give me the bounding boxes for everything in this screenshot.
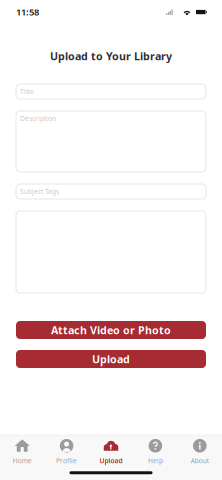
button[interactable]: Upload [89,435,133,471]
staticText: Upload [92,352,130,366]
button[interactable]: Help [133,435,178,471]
staticText: 11:58 [16,6,39,18]
staticText: Help [148,456,163,465]
staticText: Upload to Your Library [50,49,172,63]
button[interactable]: Upload [16,350,206,368]
button[interactable]: Home [0,435,44,471]
staticText: Home [13,456,32,465]
staticText: Title [20,87,34,96]
button[interactable]: Profile [44,435,89,471]
button[interactable]: Attach Video or Photo [16,321,206,339]
staticText: Upload [99,456,122,465]
staticText: Profile [56,456,77,465]
staticText: Attach Video or Photo [51,323,171,337]
staticText: Subject Tags [20,187,59,196]
staticText: Description [20,114,56,123]
button[interactable]: About [178,435,222,471]
staticText: About [191,456,209,465]
